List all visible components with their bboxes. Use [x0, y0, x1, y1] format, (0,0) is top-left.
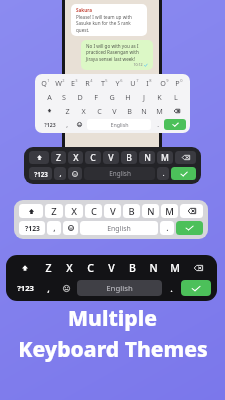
- button[interactable]: C: [92, 105, 106, 116]
- button[interactable]: X: [60, 260, 79, 276]
- staticText: English: [106, 283, 133, 294]
- staticText: 2: [62, 78, 65, 83]
- button[interactable]: Q: [39, 77, 52, 88]
- staticText: 1: [47, 78, 50, 83]
- button[interactable]: X: [65, 204, 83, 218]
- button[interactable]: X: [76, 105, 91, 116]
- button[interactable]: Enter: [181, 280, 211, 296]
- button[interactable]: Enter: [171, 167, 196, 180]
- button[interactable]: Shift: [29, 151, 49, 164]
- button[interactable]: Y: [112, 77, 126, 88]
- staticText: X: [73, 152, 79, 164]
- button[interactable]: V: [103, 151, 119, 164]
- button[interactable]: Shift: [39, 105, 59, 116]
- button[interactable]: .: [160, 221, 174, 235]
- staticText: X: [81, 106, 86, 116]
- button[interactable]: English: [77, 280, 162, 296]
- button[interactable]: Backspace: [186, 260, 211, 276]
- staticText: .: [157, 120, 159, 129]
- button[interactable]: N: [137, 105, 151, 116]
- button[interactable]: E: [67, 77, 81, 88]
- button[interactable]: R: [82, 77, 96, 88]
- staticText: T: [101, 78, 105, 88]
- button[interactable]: T: [97, 77, 111, 88]
- staticText: Q: [41, 78, 47, 88]
- button[interactable]: ,: [47, 221, 61, 235]
- staticText: Please! I will team up with Sasuke kun f…: [76, 14, 142, 33]
- button[interactable]: S: [57, 91, 71, 102]
- button[interactable]: H: [120, 91, 135, 102]
- button[interactable]: B: [123, 260, 142, 276]
- button[interactable]: M: [157, 151, 173, 164]
- button[interactable]: ,: [54, 167, 66, 180]
- button[interactable]: W: [53, 77, 66, 88]
- button[interactable]: Z: [39, 260, 58, 276]
- button[interactable]: Emoji: [58, 280, 75, 296]
- button[interactable]: English: [84, 167, 155, 180]
- button[interactable]: I: [142, 77, 156, 88]
- button[interactable]: V: [104, 204, 121, 218]
- button[interactable]: G: [104, 91, 119, 102]
- button[interactable]: .: [157, 167, 169, 180]
- button[interactable]: D: [72, 91, 87, 102]
- button[interactable]: Backspace: [175, 151, 196, 164]
- button[interactable]: ?123: [39, 119, 60, 130]
- staticText: S: [62, 92, 66, 102]
- staticText: P: [175, 78, 180, 88]
- staticText: C: [97, 106, 102, 116]
- button[interactable]: Backspace: [180, 204, 203, 218]
- button[interactable]: K: [152, 91, 167, 102]
- button[interactable]: V: [107, 105, 121, 116]
- button[interactable]: ?123: [12, 280, 39, 296]
- button[interactable]: Shift: [12, 260, 37, 276]
- button[interactable]: Z: [60, 105, 75, 116]
- button[interactable]: Emoji: [68, 167, 82, 180]
- button[interactable]: U: [127, 77, 141, 88]
- button[interactable]: ?123: [19, 221, 45, 235]
- staticText: 6: [120, 78, 123, 83]
- button[interactable]: C: [85, 204, 102, 218]
- button[interactable]: C: [85, 151, 101, 164]
- button[interactable]: J: [136, 91, 151, 102]
- button[interactable]: Z: [45, 204, 63, 218]
- staticText: A: [47, 92, 52, 102]
- button[interactable]: F: [88, 91, 103, 102]
- button[interactable]: Emoji: [63, 221, 78, 235]
- button[interactable]: Emoji: [73, 119, 86, 130]
- button[interactable]: Backspace: [167, 105, 186, 116]
- button[interactable]: .: [152, 119, 163, 130]
- button[interactable]: C: [81, 260, 100, 276]
- button[interactable]: ,: [61, 119, 72, 130]
- button[interactable]: M: [161, 204, 178, 218]
- staticText: B: [129, 261, 136, 275]
- button[interactable]: Shift: [19, 204, 43, 218]
- staticText: 10:12: [133, 62, 143, 67]
- button[interactable]: L: [168, 91, 183, 102]
- button[interactable]: B: [122, 105, 136, 116]
- button[interactable]: Z: [51, 151, 66, 164]
- button[interactable]: N: [144, 260, 163, 276]
- staticText: ,: [53, 222, 56, 234]
- button[interactable]: English: [87, 119, 151, 130]
- button[interactable]: English: [80, 221, 158, 235]
- button[interactable]: O: [157, 77, 171, 88]
- button[interactable]: N: [139, 151, 155, 164]
- button[interactable]: ,: [41, 280, 56, 296]
- button[interactable]: B: [123, 204, 140, 218]
- button[interactable]: V: [102, 260, 121, 276]
- staticText: I: [146, 78, 149, 88]
- staticText: ,: [47, 282, 50, 295]
- button[interactable]: M: [152, 105, 166, 116]
- button[interactable]: A: [42, 91, 56, 102]
- button[interactable]: N: [142, 204, 159, 218]
- button[interactable]: Enter: [176, 221, 203, 235]
- staticText: English: [107, 224, 131, 233]
- button[interactable]: P: [172, 77, 186, 88]
- button[interactable]: ?123: [29, 167, 52, 180]
- button[interactable]: .: [164, 280, 179, 296]
- button[interactable]: M: [165, 260, 184, 276]
- button[interactable]: Enter: [164, 119, 186, 130]
- button[interactable]: X: [68, 151, 83, 164]
- staticText: Z: [45, 261, 52, 275]
- button[interactable]: B: [121, 151, 137, 164]
